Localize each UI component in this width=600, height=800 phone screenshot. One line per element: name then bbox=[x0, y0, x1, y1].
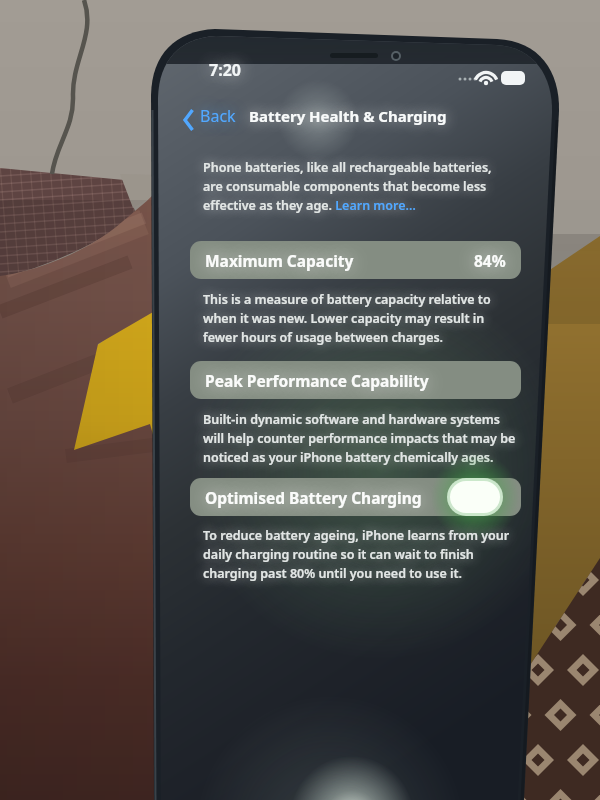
button[interactable]: Maximum Capacity bbox=[190, 241, 521, 279]
button[interactable]: Phone batteries, like all rechargeable b… bbox=[203, 159, 509, 213]
staticText: This is a measure of battery capacity re… bbox=[203, 291, 499, 345]
staticText: Built-in dynamic software and hardware s… bbox=[203, 411, 516, 465]
staticText: Battery Health & Charging bbox=[249, 106, 447, 126]
other: Wi-Fi and battery status bbox=[456, 68, 524, 90]
staticText: 7:20 bbox=[209, 59, 241, 81]
staticText: To reduce battery ageing, iPhone learns … bbox=[203, 527, 515, 581]
staticText: 84% bbox=[474, 250, 506, 271]
staticText: Phone batteries, like all rechargeable b… bbox=[203, 159, 509, 213]
button[interactable]: Peak Performance Capability bbox=[190, 361, 521, 399]
button[interactable]: Back bbox=[178, 100, 240, 132]
staticText: Maximum Capacity bbox=[205, 250, 354, 271]
button[interactable]: Optimised Battery Charging on bbox=[431, 469, 515, 507]
staticText: Peak Performance Capability bbox=[205, 370, 429, 391]
button[interactable]: Optimised Battery Charging bbox=[190, 478, 521, 516]
staticText: Back bbox=[200, 105, 236, 127]
staticText: Optimised Battery Charging bbox=[205, 487, 422, 508]
